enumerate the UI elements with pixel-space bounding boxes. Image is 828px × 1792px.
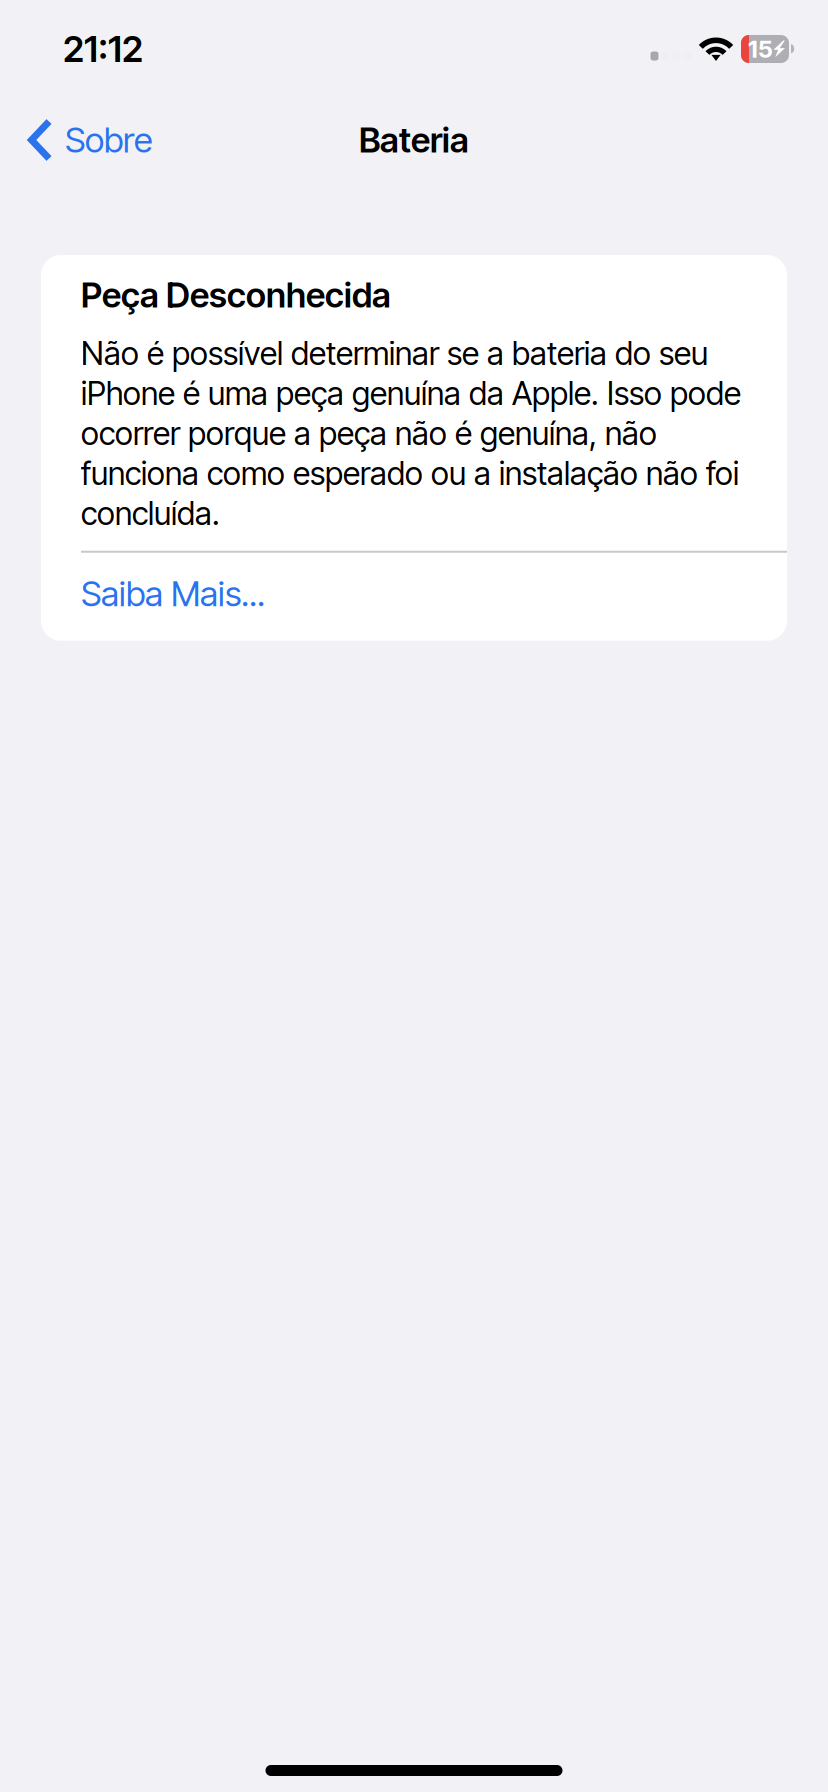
staticText: Bateria: [359, 119, 469, 161]
staticText: Não é possível determinar se a bateria d…: [81, 334, 741, 533]
staticText: 21:12: [63, 27, 143, 71]
staticText: Saiba Mais...: [81, 573, 265, 615]
staticText: Sobre: [65, 119, 152, 161]
staticText: Peça Desconhecida: [81, 274, 391, 316]
button[interactable]: Saiba Mais...: [41, 553, 787, 641]
staticText: 15: [748, 34, 773, 63]
button[interactable]: Voltar para Sobre: [16, 96, 164, 184]
